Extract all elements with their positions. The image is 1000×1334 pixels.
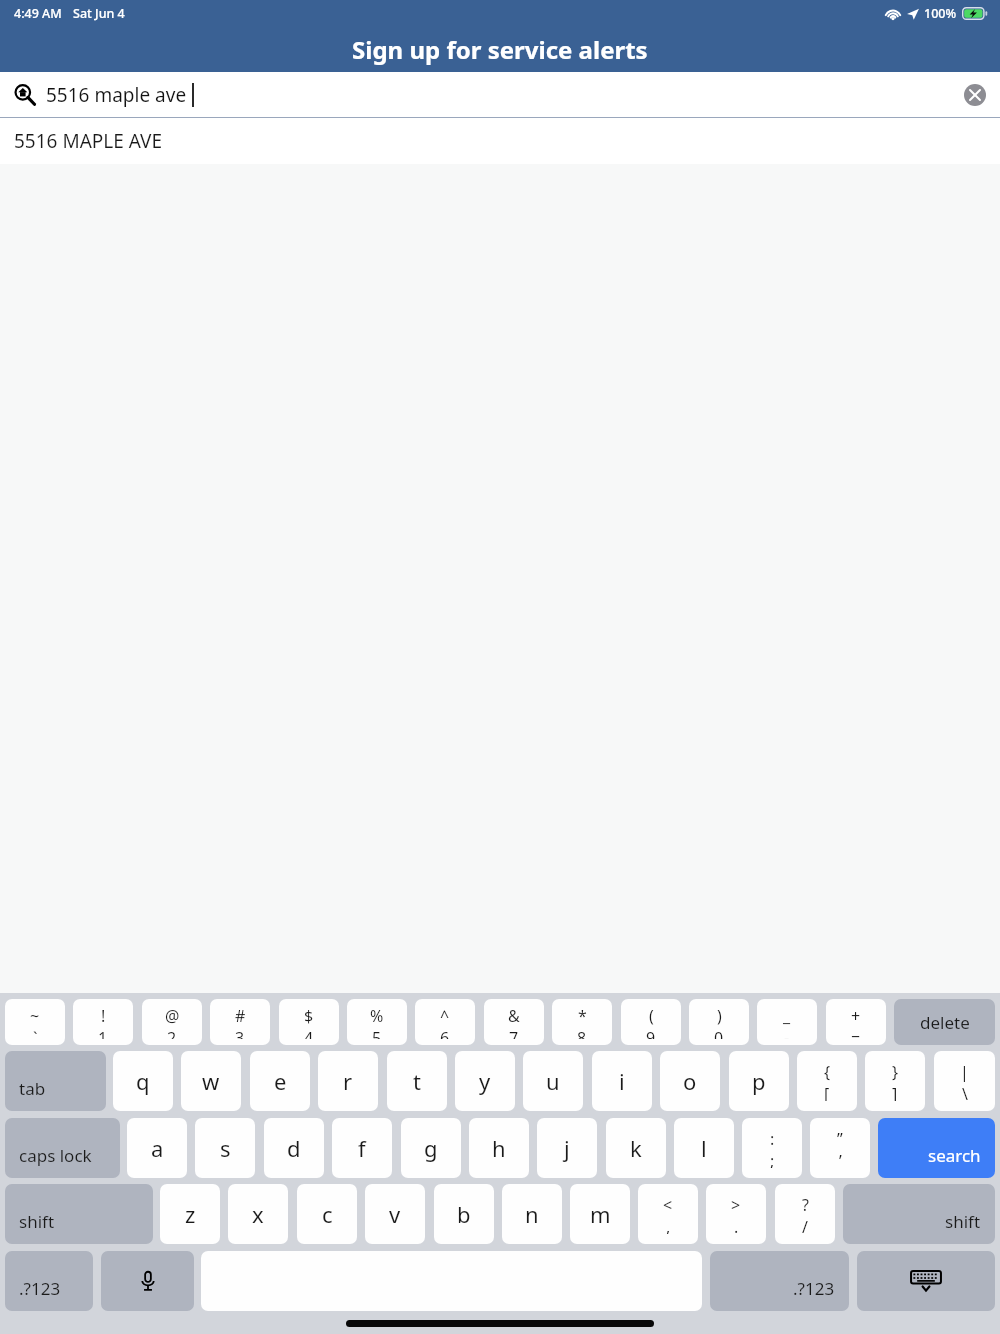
button[interactable]: v: [365, 1184, 425, 1244]
button[interactable]: u: [523, 1051, 583, 1111]
staticText: ’: [839, 1150, 842, 1168]
button[interactable]: a: [127, 1118, 187, 1178]
button[interactable]: ^: [415, 999, 475, 1045]
button[interactable]: d: [264, 1118, 324, 1178]
button[interactable]: shift: [843, 1184, 995, 1244]
staticText: w: [202, 1066, 220, 1096]
button[interactable]: _: [757, 999, 817, 1045]
staticText: i: [619, 1066, 625, 1096]
staticText: ?: [802, 1194, 809, 1216]
button[interactable]: h: [469, 1118, 529, 1178]
button[interactable]: *: [552, 999, 612, 1045]
staticText: y: [479, 1066, 491, 1096]
button[interactable]: @: [142, 999, 202, 1045]
staticText: ”: [837, 1128, 843, 1150]
button[interactable]: q: [113, 1051, 173, 1111]
staticText: ): [717, 1005, 722, 1027]
button[interactable]: shift: [5, 1184, 153, 1244]
button[interactable]: t: [387, 1051, 447, 1111]
button[interactable]: !: [73, 999, 133, 1045]
staticText: u: [546, 1066, 560, 1096]
button[interactable]: f: [332, 1118, 392, 1178]
button[interactable]: o: [660, 1051, 720, 1111]
staticText: @: [165, 1005, 180, 1027]
button[interactable]: i: [592, 1051, 652, 1111]
button[interactable]: :: [742, 1118, 802, 1178]
button[interactable]: b: [434, 1184, 494, 1244]
staticText: [: [824, 1083, 830, 1101]
button[interactable]: c: [297, 1184, 357, 1244]
staticText: +: [851, 1005, 861, 1027]
button[interactable]: y: [455, 1051, 515, 1111]
button[interactable]: <: [638, 1184, 698, 1244]
staticText: delete: [920, 1011, 970, 1034]
staticText: x: [252, 1199, 264, 1229]
staticText: b: [457, 1199, 471, 1229]
button[interactable]: 5516 MAPLE AVE: [0, 118, 1000, 164]
button[interactable]: ): [689, 999, 749, 1045]
button[interactable]: 5516 maple ave: [0, 72, 1000, 117]
staticText: 1: [98, 1027, 108, 1039]
button[interactable]: %: [347, 999, 407, 1045]
staticText: ^: [440, 1005, 450, 1027]
staticText: 5: [372, 1027, 382, 1039]
button[interactable]: p: [729, 1051, 789, 1111]
button[interactable]: #: [210, 999, 270, 1045]
staticText: n: [525, 1199, 539, 1229]
button[interactable]: s: [195, 1118, 255, 1178]
staticText: caps lock: [19, 1144, 92, 1167]
button[interactable]: z: [160, 1184, 220, 1244]
button[interactable]: +: [826, 999, 886, 1045]
button[interactable]: e: [250, 1051, 310, 1111]
staticText: 9: [646, 1027, 656, 1039]
staticText: _: [783, 1005, 791, 1027]
button[interactable]: search: [878, 1118, 995, 1178]
staticText: 0: [714, 1027, 724, 1039]
staticText: !: [101, 1005, 106, 1027]
button[interactable]: m: [570, 1184, 630, 1244]
staticText: 8: [577, 1027, 587, 1039]
button[interactable]: Clear text: [964, 84, 986, 106]
staticText: c: [322, 1199, 333, 1229]
button[interactable]: .?123: [5, 1251, 93, 1311]
button[interactable]: x: [228, 1184, 288, 1244]
button[interactable]: delete: [894, 999, 995, 1045]
button[interactable]: r: [318, 1051, 378, 1111]
button[interactable]: (: [621, 999, 681, 1045]
button[interactable]: Hide keyboard: [857, 1251, 995, 1311]
button[interactable]: g: [401, 1118, 461, 1178]
button[interactable]: }: [865, 1051, 925, 1111]
button[interactable]: n: [502, 1184, 562, 1244]
button[interactable]: l: [674, 1118, 734, 1178]
button[interactable]: $: [279, 999, 339, 1045]
staticText: $: [304, 1005, 314, 1027]
staticText: search: [928, 1144, 981, 1167]
button[interactable]: ~: [5, 999, 65, 1045]
staticText: .: [734, 1216, 739, 1234]
staticText: 4:49 AM: [14, 5, 62, 22]
staticText: a: [151, 1133, 164, 1163]
button[interactable]: Dictation: [101, 1251, 194, 1311]
staticText: Sign up for service alerts: [352, 33, 648, 66]
staticText: =: [851, 1027, 861, 1039]
staticText: 5516 maple ave: [46, 82, 187, 108]
button[interactable]: j: [537, 1118, 597, 1178]
staticText: >: [731, 1194, 741, 1216]
button[interactable]: tab: [5, 1051, 106, 1111]
button[interactable]: |: [934, 1051, 995, 1111]
staticText: d: [287, 1133, 301, 1163]
button[interactable]: &: [484, 999, 544, 1045]
staticText: }: [892, 1061, 899, 1083]
button[interactable]: k: [606, 1118, 666, 1178]
button[interactable]: ?: [775, 1184, 835, 1244]
staticText: g: [424, 1133, 438, 1163]
staticText: |: [960, 1061, 969, 1083]
button[interactable]: w: [181, 1051, 241, 1111]
button[interactable]: caps lock: [5, 1118, 120, 1178]
button[interactable]: >: [706, 1184, 766, 1244]
staticText: r: [343, 1066, 353, 1096]
button[interactable]: {: [797, 1051, 857, 1111]
button[interactable]: ”: [810, 1118, 870, 1178]
button[interactable]: .?123: [710, 1251, 849, 1311]
